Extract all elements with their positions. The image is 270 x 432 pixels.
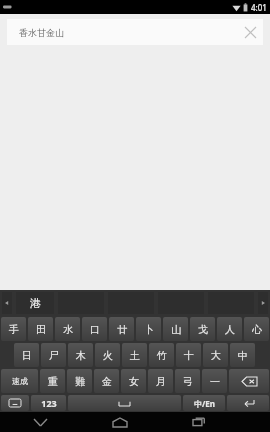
button[interactable]: 火 (95, 343, 120, 367)
staticText: 速成 (12, 376, 28, 386)
button[interactable]: Clear text (237, 19, 263, 45)
staticText: 土 (130, 349, 140, 362)
button[interactable]: 尸 (41, 343, 66, 367)
button[interactable]: 金 (94, 369, 119, 393)
staticText: 卜 (144, 323, 154, 336)
button[interactable]: 日 (14, 343, 39, 367)
staticText: 山 (171, 323, 181, 336)
staticText: 月 (156, 375, 166, 388)
staticText: 弓 (183, 375, 193, 388)
button[interactable]: 戈 (190, 317, 215, 341)
button[interactable]: 心 (244, 317, 269, 341)
staticText: 十 (184, 349, 194, 362)
button[interactable]: Space (68, 395, 181, 411)
button[interactable]: 重 (40, 369, 65, 393)
button[interactable]: 山 (163, 317, 188, 341)
button[interactable]: 月 (148, 369, 173, 393)
button[interactable]: 人 (217, 317, 242, 341)
button[interactable]: 手 (1, 317, 26, 341)
button[interactable]: Hide keyboard (0, 412, 80, 432)
button[interactable]: 女 (121, 369, 146, 393)
button[interactable]: 速成 (1, 369, 38, 393)
staticText: 一 (210, 375, 220, 388)
staticText: 重 (48, 375, 58, 388)
button[interactable]: Home (80, 412, 159, 432)
staticText: 尸 (49, 349, 59, 362)
button[interactable]: 難 (67, 369, 92, 393)
staticText: 中/En (194, 398, 215, 409)
staticText: 口 (90, 323, 100, 336)
staticText: 木 (76, 349, 86, 362)
button[interactable]: 卜 (136, 317, 161, 341)
button[interactable]: 港 (16, 292, 54, 314)
button[interactable]: 123 (31, 395, 66, 411)
staticText: 4:01 (251, 2, 267, 13)
staticText: 人 (225, 323, 235, 336)
button[interactable]: 口 (82, 317, 107, 341)
staticText: 火 (103, 349, 113, 362)
button[interactable]: 木 (68, 343, 93, 367)
staticText: 水 (63, 323, 73, 336)
staticText: 手 (9, 323, 19, 336)
button[interactable]: Previous candidates (2, 292, 12, 314)
button[interactable]: Switch keyboard (1, 395, 29, 411)
staticText: 大 (211, 349, 221, 362)
staticText: 金 (102, 375, 112, 388)
button[interactable]: 十 (176, 343, 201, 367)
staticText: 日 (22, 349, 32, 362)
button[interactable]: 一 (202, 369, 227, 393)
button[interactable]: Backspace (229, 369, 269, 393)
button[interactable]: 大 (203, 343, 228, 367)
staticText: 港 (30, 296, 41, 310)
staticText: 123 (41, 397, 57, 409)
button[interactable]: More candidates (258, 292, 268, 314)
button[interactable]: 水 (55, 317, 80, 341)
button[interactable]: 廿 (109, 317, 134, 341)
button[interactable]: 土 (122, 343, 147, 367)
staticText: 難 (75, 375, 85, 388)
button[interactable]: 田 (28, 317, 53, 341)
staticText: 戈 (198, 323, 208, 336)
button[interactable]: Recent apps (159, 412, 238, 432)
staticText: 田 (36, 323, 46, 336)
staticText: 香水甘金山 (19, 27, 237, 38)
staticText: 竹 (157, 349, 167, 362)
button[interactable]: 香水甘金山 (7, 19, 263, 45)
staticText: 心 (252, 323, 262, 336)
button[interactable]: 中/En (183, 395, 225, 411)
staticText: 中 (238, 349, 248, 362)
button[interactable]: Enter (227, 395, 269, 411)
staticText: 廿 (117, 323, 127, 336)
staticText: 女 (129, 375, 139, 388)
button[interactable]: 中 (230, 343, 255, 367)
button[interactable]: 弓 (175, 369, 200, 393)
button[interactable]: 竹 (149, 343, 174, 367)
